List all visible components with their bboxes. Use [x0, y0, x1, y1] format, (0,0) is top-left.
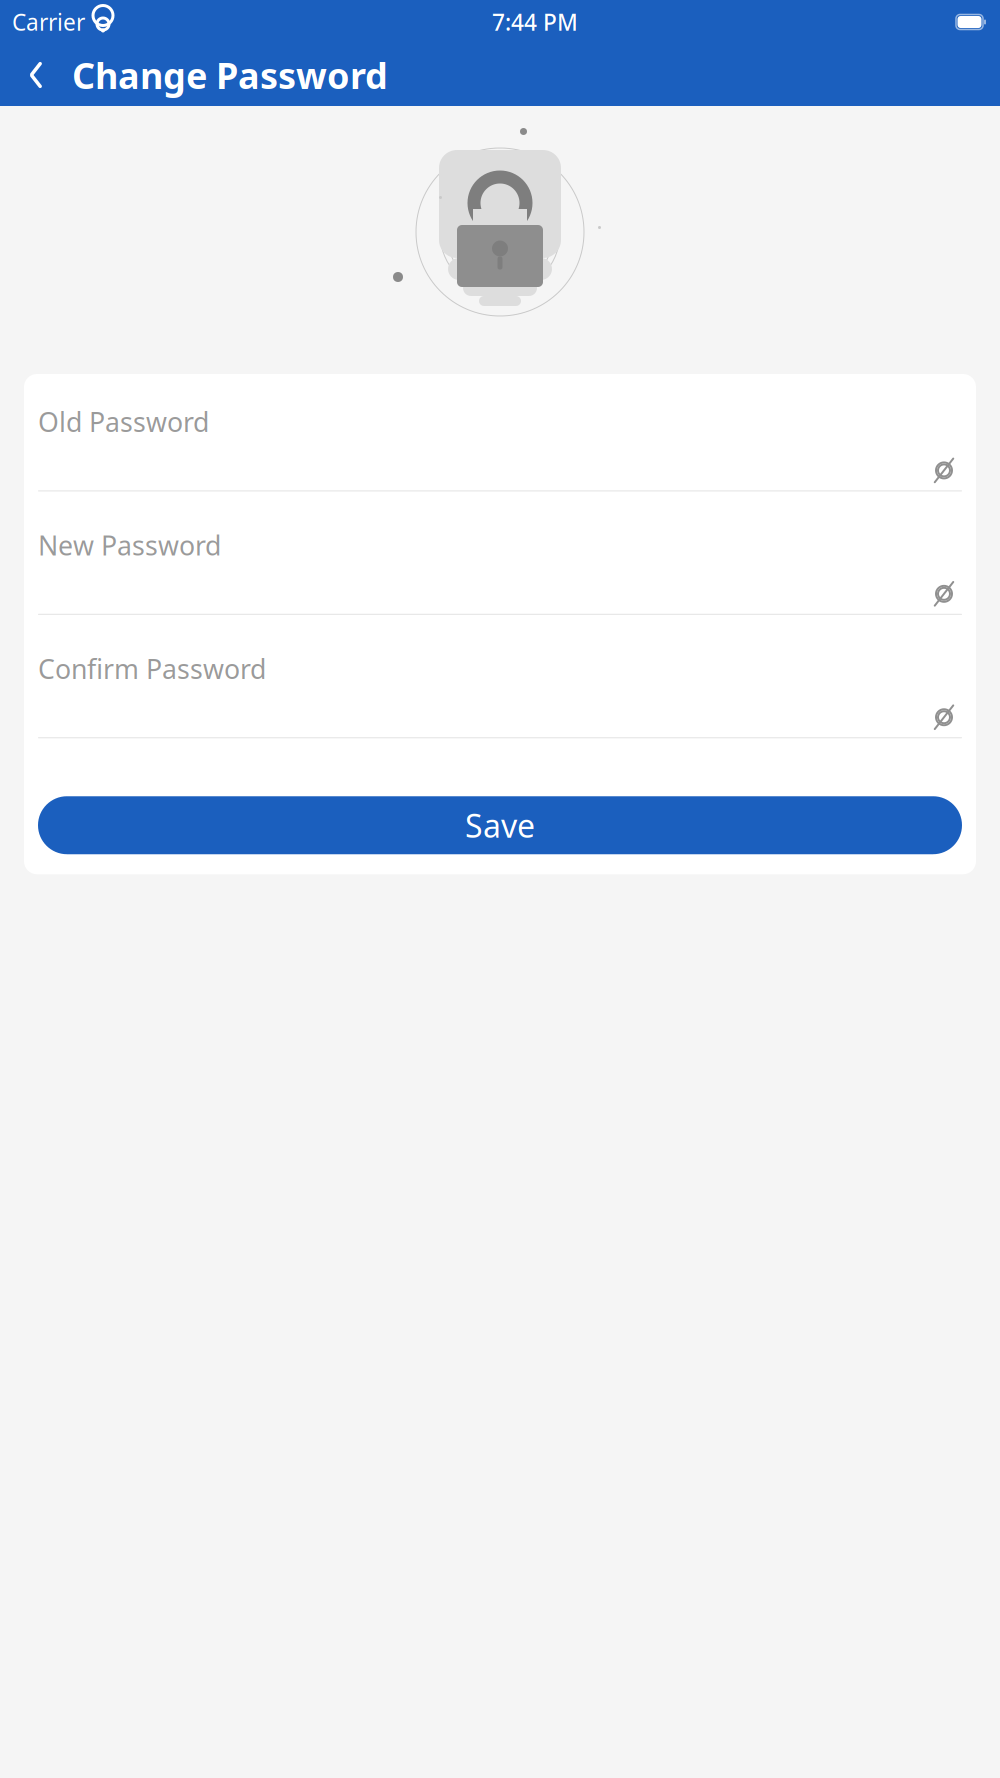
staticText: New Password: [38, 527, 221, 563]
button[interactable]: Show password: [926, 455, 962, 485]
staticText: Confirm Password: [38, 651, 266, 686]
button[interactable]: Save: [38, 796, 962, 854]
button[interactable]: Show password: [926, 702, 962, 732]
staticText: Old Password: [38, 404, 209, 439]
button[interactable]: Show password: [926, 579, 962, 609]
button[interactable]: Back: [14, 53, 58, 97]
staticText: Change Password: [72, 51, 388, 99]
staticText: Save: [465, 804, 535, 846]
staticText: Carrier: [12, 7, 85, 37]
staticText: 7:44 PM: [492, 7, 578, 37]
